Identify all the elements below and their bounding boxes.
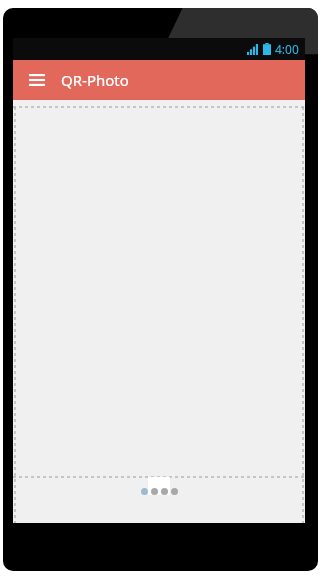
staticText: QR-Photo bbox=[61, 70, 129, 90]
staticText: 4:00 bbox=[275, 41, 299, 57]
button[interactable]: Page indicator bbox=[139, 486, 180, 497]
button[interactable]: Open navigation drawer bbox=[23, 66, 51, 94]
